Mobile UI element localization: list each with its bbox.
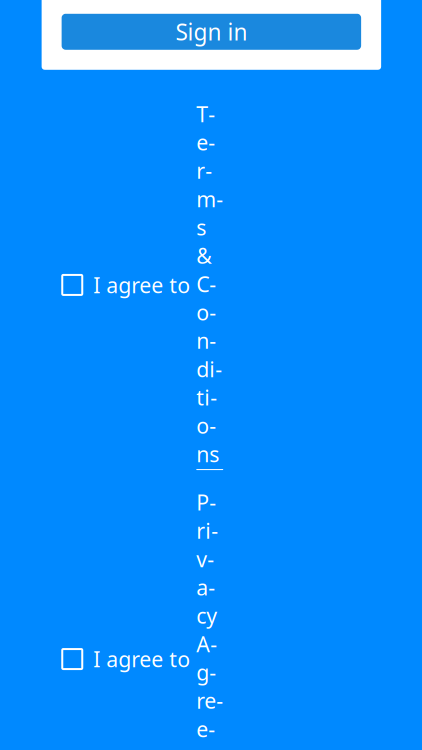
staticText: Sign in <box>175 17 247 47</box>
staticText: Terms & Conditions <box>196 100 223 468</box>
staticText: I agree to <box>93 645 196 673</box>
button[interactable]: I agree to <box>62 100 223 470</box>
button[interactable]: Sign in <box>62 14 361 50</box>
staticText: I agree to <box>93 271 196 299</box>
staticText: Privacy Agreement <box>196 488 223 750</box>
button[interactable]: I agree to <box>62 488 223 750</box>
